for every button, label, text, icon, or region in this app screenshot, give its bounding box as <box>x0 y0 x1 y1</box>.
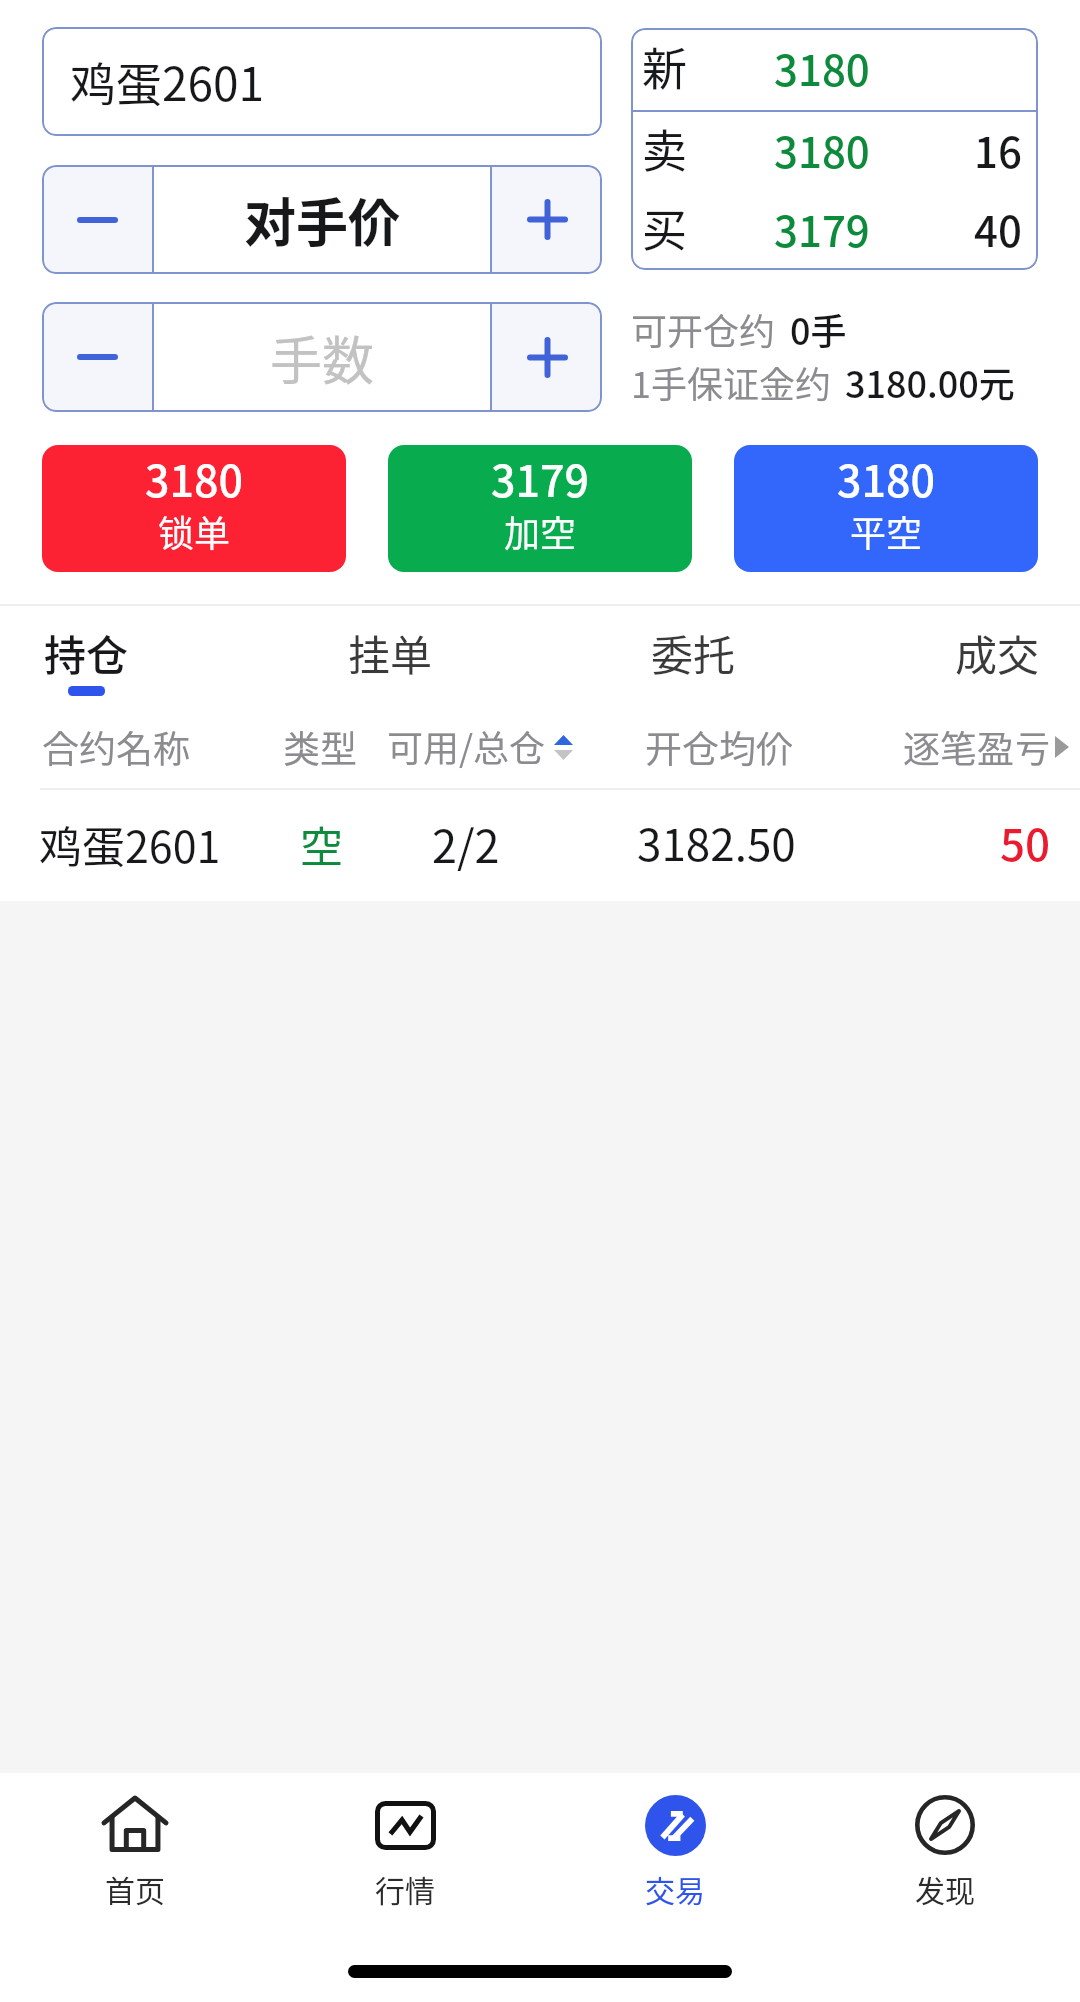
staticText: 锁单 <box>158 505 231 557</box>
staticText: 委托 <box>651 622 736 683</box>
staticText: 40 <box>974 198 1022 259</box>
staticText: 3180 <box>837 447 936 509</box>
button[interactable]: 鸡蛋2601 <box>0 790 1080 901</box>
button[interactable]: 鸡蛋2601 <box>42 27 602 136</box>
staticText: 16 <box>974 119 1022 180</box>
button[interactable]: 发现 <box>810 1773 1080 2002</box>
staticText: 持仓 <box>44 622 129 683</box>
button[interactable]: 交易 <box>540 1773 810 2002</box>
staticText: 挂单 <box>348 622 433 683</box>
staticText: 1手保证金约 <box>631 356 831 408</box>
staticText: 空 <box>300 813 343 875</box>
staticText: 首页 <box>105 1867 165 1910</box>
staticText: 3182.50 <box>637 810 796 874</box>
staticText: 成交 <box>955 622 1040 683</box>
button[interactable]: 对手价 <box>154 165 490 274</box>
staticText: 鸡蛋2601 <box>70 48 265 115</box>
staticText: 手数 <box>270 320 375 395</box>
staticText: 3180 <box>145 447 244 509</box>
button[interactable]: 手数 <box>154 302 490 412</box>
staticText: 鸡蛋2601 <box>39 813 221 875</box>
staticText: 3180.00元 <box>845 356 1015 408</box>
button[interactable]: 成交 <box>955 606 1040 705</box>
staticText: 新 <box>642 34 688 99</box>
button[interactable]: 行情 <box>270 1773 540 2002</box>
staticText: 可用/总仓 <box>387 720 546 772</box>
staticText: 发现 <box>915 1867 975 1910</box>
staticText: 交易 <box>645 1867 705 1910</box>
staticText: 买 <box>642 195 688 260</box>
button[interactable]: 买 <box>642 191 1022 270</box>
staticText: 0手 <box>790 303 847 355</box>
staticText: 加空 <box>504 505 577 557</box>
staticText: 类型 <box>283 720 357 774</box>
button[interactable]: 卖 <box>642 112 1022 191</box>
staticText: 合约名称 <box>42 720 190 774</box>
button[interactable]: 挂单 <box>348 606 433 705</box>
staticText: 行情 <box>375 1867 435 1910</box>
button[interactable]: 3180 <box>42 445 346 572</box>
button[interactable]: 持仓 <box>44 606 129 705</box>
button[interactable]: Increase <box>492 165 602 274</box>
button[interactable]: Increase <box>492 302 602 412</box>
button[interactable]: 委托 <box>651 606 736 705</box>
staticText: 3180 <box>774 119 870 180</box>
staticText: 3180 <box>774 37 870 98</box>
staticText: 开仓均价 <box>645 720 793 774</box>
button[interactable]: 首页 <box>0 1773 270 2002</box>
button[interactable]: 3179 <box>388 445 692 572</box>
staticText: 卖 <box>642 116 688 181</box>
staticText: 可开仓约 <box>631 303 776 355</box>
button[interactable]: More columns <box>1055 736 1069 758</box>
staticText: 50 <box>1000 810 1051 874</box>
staticText: 对手价 <box>244 182 401 257</box>
staticText: 3179 <box>491 447 590 509</box>
button[interactable]: 3180 <box>734 445 1038 572</box>
button[interactable]: Sort by available / total <box>554 735 573 760</box>
button[interactable]: Decrease <box>42 165 152 274</box>
staticText: 3179 <box>774 198 870 259</box>
button[interactable]: 新 <box>642 28 1022 110</box>
staticText: 平空 <box>850 505 923 557</box>
staticText: 逐笔盈亏 <box>903 720 1051 774</box>
staticText: 2/2 <box>432 811 500 876</box>
button[interactable]: Decrease <box>42 302 152 412</box>
